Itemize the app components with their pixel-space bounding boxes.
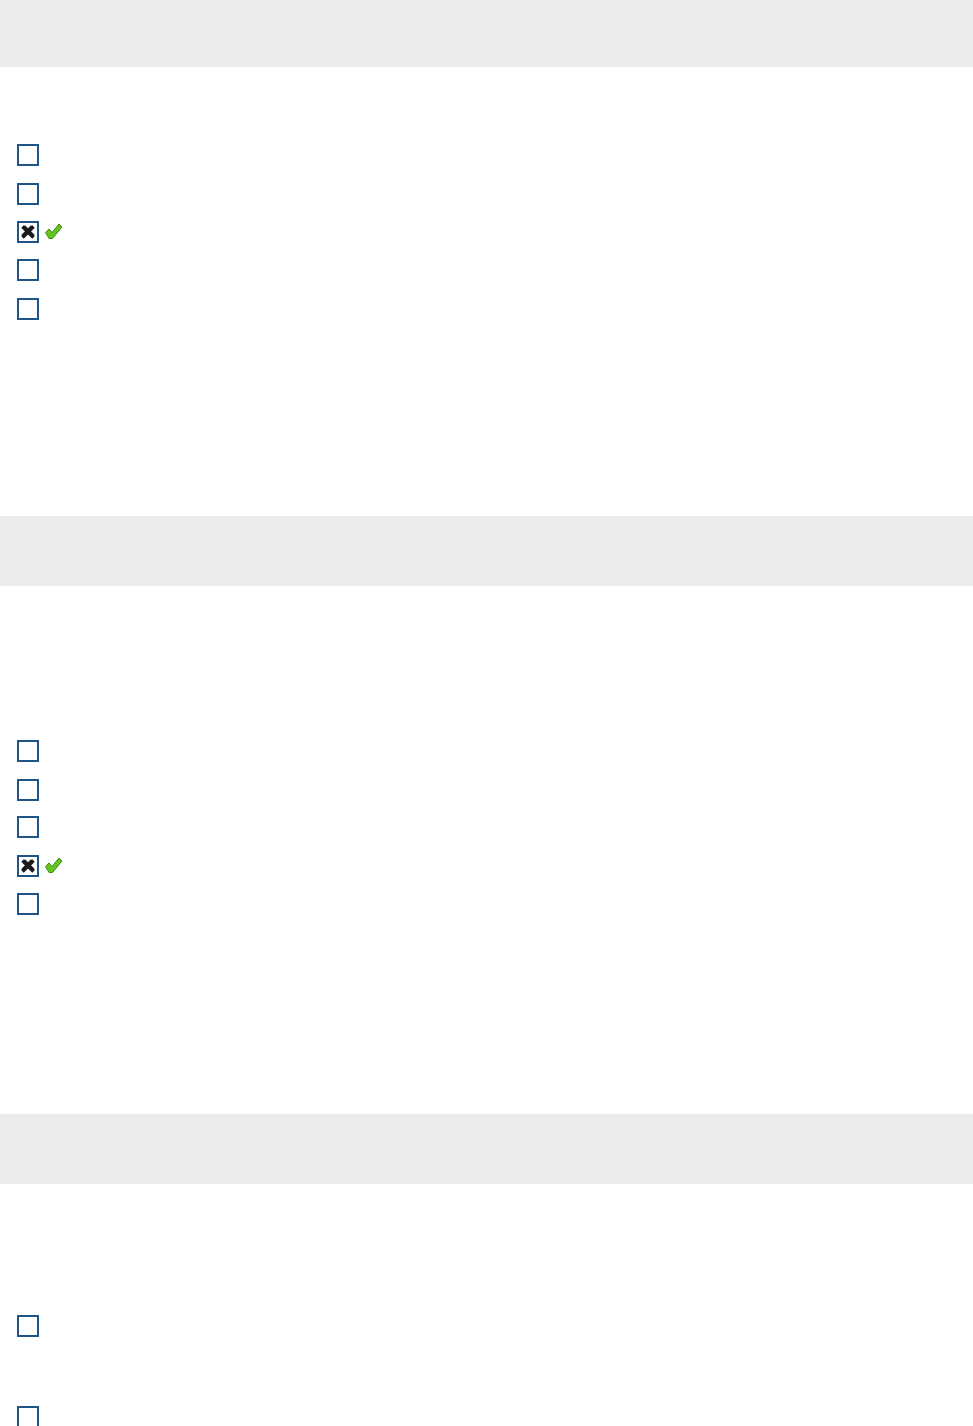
button[interactable]: Option 1 xyxy=(17,1315,39,1337)
button[interactable]: Option 2 xyxy=(17,183,39,205)
button[interactable]: Option 5 xyxy=(17,893,39,915)
button[interactable]: Option 5 xyxy=(17,298,39,320)
button[interactable]: Option 4, selected xyxy=(17,855,65,877)
button[interactable]: Option 4 xyxy=(17,259,39,281)
button[interactable]: Option 1 xyxy=(17,740,39,762)
button[interactable]: Option 2 xyxy=(17,1406,39,1426)
button[interactable]: Option 2 xyxy=(17,779,39,801)
button[interactable]: Option 1 xyxy=(17,144,39,166)
button[interactable]: Option 3, selected xyxy=(17,221,65,243)
button[interactable]: Option 3 xyxy=(17,816,39,838)
